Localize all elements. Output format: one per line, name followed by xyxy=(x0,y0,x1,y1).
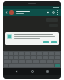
button[interactable]: Cancel xyxy=(43,41,49,43)
button[interactable]: Back xyxy=(3,9,61,16)
button[interactable]: Call xyxy=(52,11,55,14)
button[interactable]: OK xyxy=(51,41,57,43)
button[interactable]: Recent apps xyxy=(46,70,49,73)
other: Back xyxy=(5,11,8,14)
button[interactable]: Home xyxy=(31,70,34,73)
button[interactable]: Back xyxy=(15,70,18,73)
button[interactable]: Video call xyxy=(47,11,50,14)
button[interactable]: More options xyxy=(56,10,59,15)
